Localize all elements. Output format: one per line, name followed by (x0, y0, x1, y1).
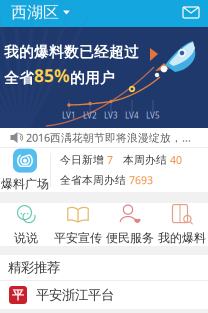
staticText: LV3 (104, 110, 118, 121)
button[interactable]: 平安宣传 (52, 201, 104, 247)
staticText: 7 (107, 153, 113, 167)
staticText: LV1 (62, 110, 76, 121)
staticText: 今日新增 (60, 153, 107, 166)
button[interactable]: 爆料广场 (0, 148, 208, 192)
staticText: LV5 (146, 110, 160, 121)
staticText: 爆料广场 (1, 177, 49, 191)
staticText: 本周办结 (123, 153, 170, 166)
staticText: LV2 (83, 110, 97, 121)
staticText: 全省本周办结 (60, 173, 129, 187)
button[interactable]: 西湖区 (0, 0, 78, 27)
staticText: 平安宣传 (54, 231, 102, 245)
staticText: 我的爆料 (158, 231, 206, 245)
button[interactable]: 平 (0, 281, 208, 309)
staticText: 40 (170, 153, 182, 167)
staticText: LV4 (125, 110, 139, 121)
staticText: 85% (34, 64, 70, 87)
button[interactable]: 便民服务 (104, 201, 156, 247)
staticText: 平安浙江平台 (36, 287, 114, 303)
button[interactable]: 说说 (0, 201, 52, 247)
button[interactable]: 2016西渪花朝节即将浪漫绽放，今年的西渪花朝 (0, 128, 208, 147)
staticText: 便民服务 (106, 231, 154, 245)
staticText: 全省 (4, 69, 34, 87)
staticText: 我的爆料数已经超过 (4, 43, 139, 61)
staticText: 的用户 (70, 69, 115, 87)
staticText: 说说 (14, 231, 38, 245)
button[interactable]: 我的爆料 (156, 201, 208, 247)
button[interactable]: Messages (174, 0, 208, 27)
staticText: 精彩推荐 (8, 259, 60, 276)
staticText: 7693 (129, 173, 153, 187)
staticText: 2016西渪花朝节即将浪漫绽放，今年的西渪花朝 (26, 130, 195, 145)
staticText: 西湖区 (11, 3, 59, 22)
staticText: 平 (12, 288, 24, 302)
